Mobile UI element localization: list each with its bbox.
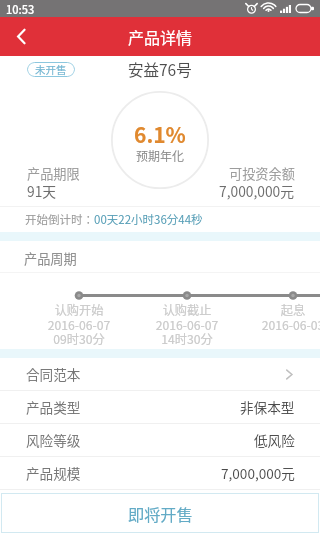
button[interactable]: 风险等级	[0, 424, 320, 456]
staticText: 产品详情	[128, 25, 193, 48]
button[interactable]: 产品类型	[0, 391, 320, 423]
button[interactable]: 产品规模	[0, 457, 320, 489]
button[interactable]: 合同范本	[0, 358, 320, 390]
staticText: 产品周期	[24, 249, 77, 268]
staticText: 即将开售	[128, 502, 193, 525]
staticText: 起息 2016-06-03	[253, 301, 320, 333]
staticText: 低风险	[254, 430, 295, 450]
button[interactable]: 未开售	[27, 62, 75, 77]
staticText: 产品类型	[26, 397, 81, 417]
staticText: 产品期限	[27, 164, 80, 183]
staticText: 7,000,000元	[219, 181, 295, 201]
staticText: 未开售	[35, 62, 67, 77]
button[interactable]: Back	[0, 17, 42, 56]
staticText: 安益76号	[128, 58, 192, 80]
staticText: 7,000,000元	[221, 463, 295, 483]
staticText: 开始倒计时：	[25, 211, 94, 228]
staticText: 非保本型	[240, 397, 295, 417]
staticText: 6.1%	[134, 119, 186, 149]
staticText: 合同范本	[26, 364, 81, 384]
staticText: 产品规模	[26, 463, 81, 483]
staticText: 预期年化	[136, 147, 185, 164]
staticText: 认购开始 2016-06-07 09时30分	[39, 301, 119, 347]
button[interactable]: 即将开售	[1, 493, 319, 533]
staticText: 00天22小时36分44秒	[94, 211, 203, 228]
staticText: 可投资余额	[229, 164, 295, 183]
staticText: 风险等级	[26, 430, 81, 450]
staticText: 91天	[27, 181, 57, 201]
staticText: 10:53	[6, 1, 35, 17]
staticText: 认购截止 2016-06-07 14时30分	[147, 301, 227, 347]
